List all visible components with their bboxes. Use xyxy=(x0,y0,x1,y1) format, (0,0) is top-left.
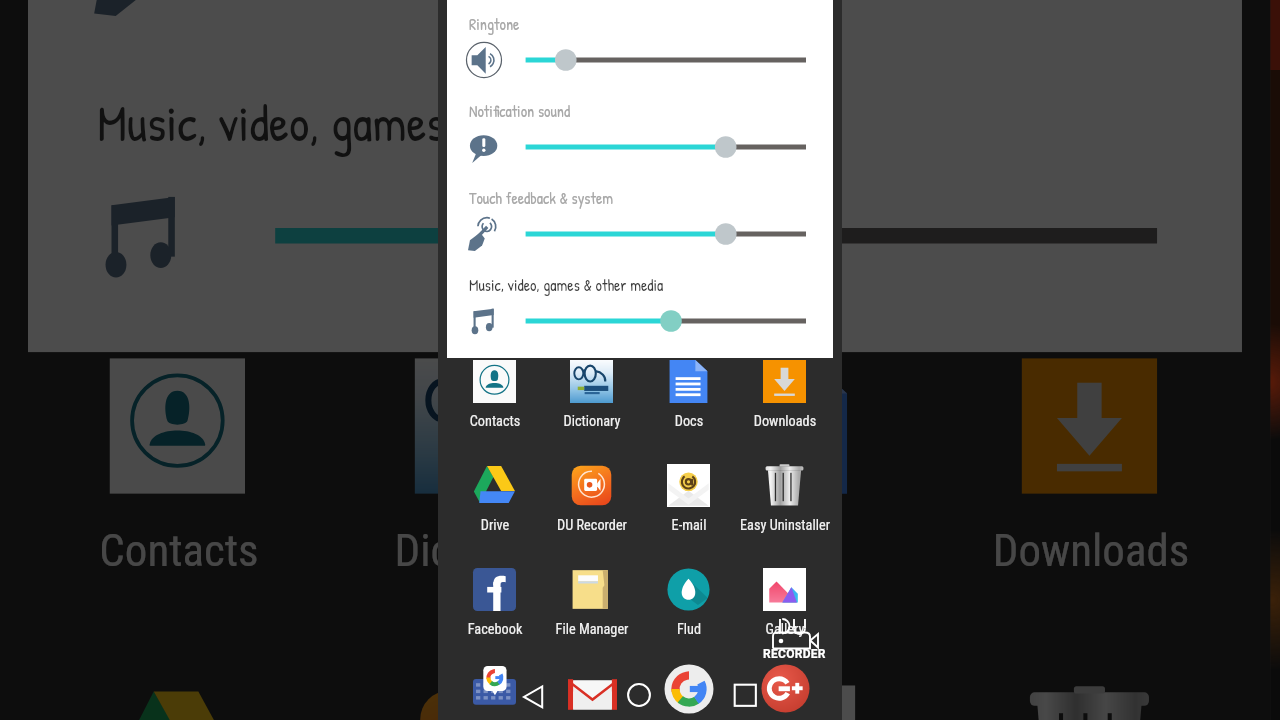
button[interactable]: Facebook xyxy=(447,564,543,656)
staticText: Downloads xyxy=(940,525,1242,579)
staticText: Docs xyxy=(641,413,737,430)
button[interactable] xyxy=(438,36,842,84)
button[interactable]: Easy Uninstaller xyxy=(737,460,833,552)
staticText: Contacts xyxy=(28,525,330,579)
staticText: Facebook xyxy=(447,621,543,638)
staticText: Flud xyxy=(641,621,737,638)
button[interactable]: Gallery xyxy=(737,564,833,656)
staticText: Easy Uninstaller xyxy=(737,517,833,534)
button[interactable]: Contacts xyxy=(447,356,543,448)
button[interactable]: Flud xyxy=(641,564,737,656)
button[interactable]: Google Keyboard xyxy=(473,666,516,709)
staticText: Docs xyxy=(638,525,940,579)
button[interactable]: File Manager xyxy=(544,564,640,656)
staticText: Dictionary xyxy=(544,413,640,430)
button[interactable]: E-mail xyxy=(638,673,940,720)
button[interactable]: DU Recorder xyxy=(333,673,635,720)
button[interactable] xyxy=(438,297,842,345)
staticText: Notification sound xyxy=(469,100,571,122)
staticText: Dictionary xyxy=(333,525,635,579)
button[interactable]: Back xyxy=(523,684,547,708)
button[interactable]: Dictionary xyxy=(333,346,635,635)
staticText: Ringtone xyxy=(469,13,520,35)
button[interactable]: Downloads xyxy=(940,346,1242,635)
staticText: Gallery xyxy=(737,621,833,638)
staticText: Contacts xyxy=(447,413,543,430)
staticText: Downloads xyxy=(737,413,833,430)
button[interactable]: Google xyxy=(664,664,714,714)
button[interactable]: DU Recorder xyxy=(544,460,640,552)
staticText: Touch feedback & system xyxy=(469,187,614,209)
button[interactable]: Dictionary xyxy=(544,356,640,448)
staticText: DU Recorder xyxy=(544,517,640,534)
staticText: File Manager xyxy=(544,621,640,638)
staticText: E-mail xyxy=(641,517,737,534)
button[interactable]: Downloads xyxy=(737,356,833,448)
button[interactable] xyxy=(438,123,842,171)
button[interactable]: Docs xyxy=(638,346,940,635)
button[interactable] xyxy=(438,210,842,258)
button[interactable]: Home xyxy=(627,683,651,707)
button[interactable]: Contacts xyxy=(28,346,330,635)
button[interactable] xyxy=(0,0,1270,38)
button[interactable]: Gmail xyxy=(567,669,618,720)
button[interactable]: Easy Uninstaller xyxy=(940,673,1242,720)
button[interactable]: Drive xyxy=(447,460,543,552)
button[interactable]: Docs xyxy=(641,356,737,448)
staticText: RECORDER xyxy=(763,647,826,661)
button[interactable]: Drive xyxy=(28,673,330,720)
button[interactable] xyxy=(0,160,1270,311)
button[interactable]: E-mail xyxy=(641,460,737,552)
button[interactable]: Google Plus xyxy=(761,664,810,713)
button[interactable]: Recents xyxy=(734,684,757,707)
staticText: Music, video, games & other media xyxy=(97,88,710,157)
staticText: Music, video, games & other media xyxy=(469,274,664,296)
staticText: Drive xyxy=(447,517,543,534)
